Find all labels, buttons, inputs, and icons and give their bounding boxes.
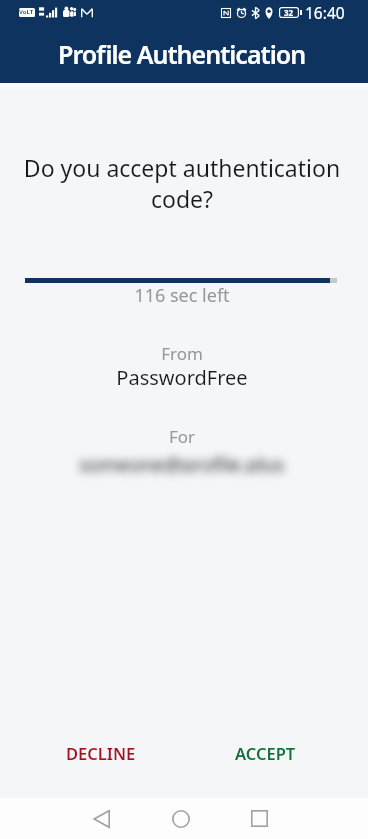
staticText: Profile Authentication: [58, 37, 306, 71]
button[interactable]: Home: [157, 798, 205, 839]
staticText: 32: [284, 7, 294, 18]
staticText: VoLTE: [19, 8, 35, 17]
staticText: 16:40: [305, 2, 345, 23]
staticText: ACCEPT: [235, 742, 296, 764]
button[interactable]: Recent apps: [235, 798, 283, 839]
button[interactable]: DECLINE: [54, 727, 148, 779]
staticText: Do you accept authentication code?: [12, 152, 352, 215]
staticText: From: [0, 342, 366, 365]
button[interactable]: ACCEPT: [223, 727, 308, 779]
button[interactable]: Back: [78, 798, 126, 839]
staticText: 116 sec left: [0, 283, 366, 308]
staticText: DECLINE: [66, 742, 136, 764]
staticText: For: [0, 425, 366, 448]
staticText: PasswordFree: [0, 364, 366, 391]
staticText: someone@profile.plus: [79, 451, 285, 473]
